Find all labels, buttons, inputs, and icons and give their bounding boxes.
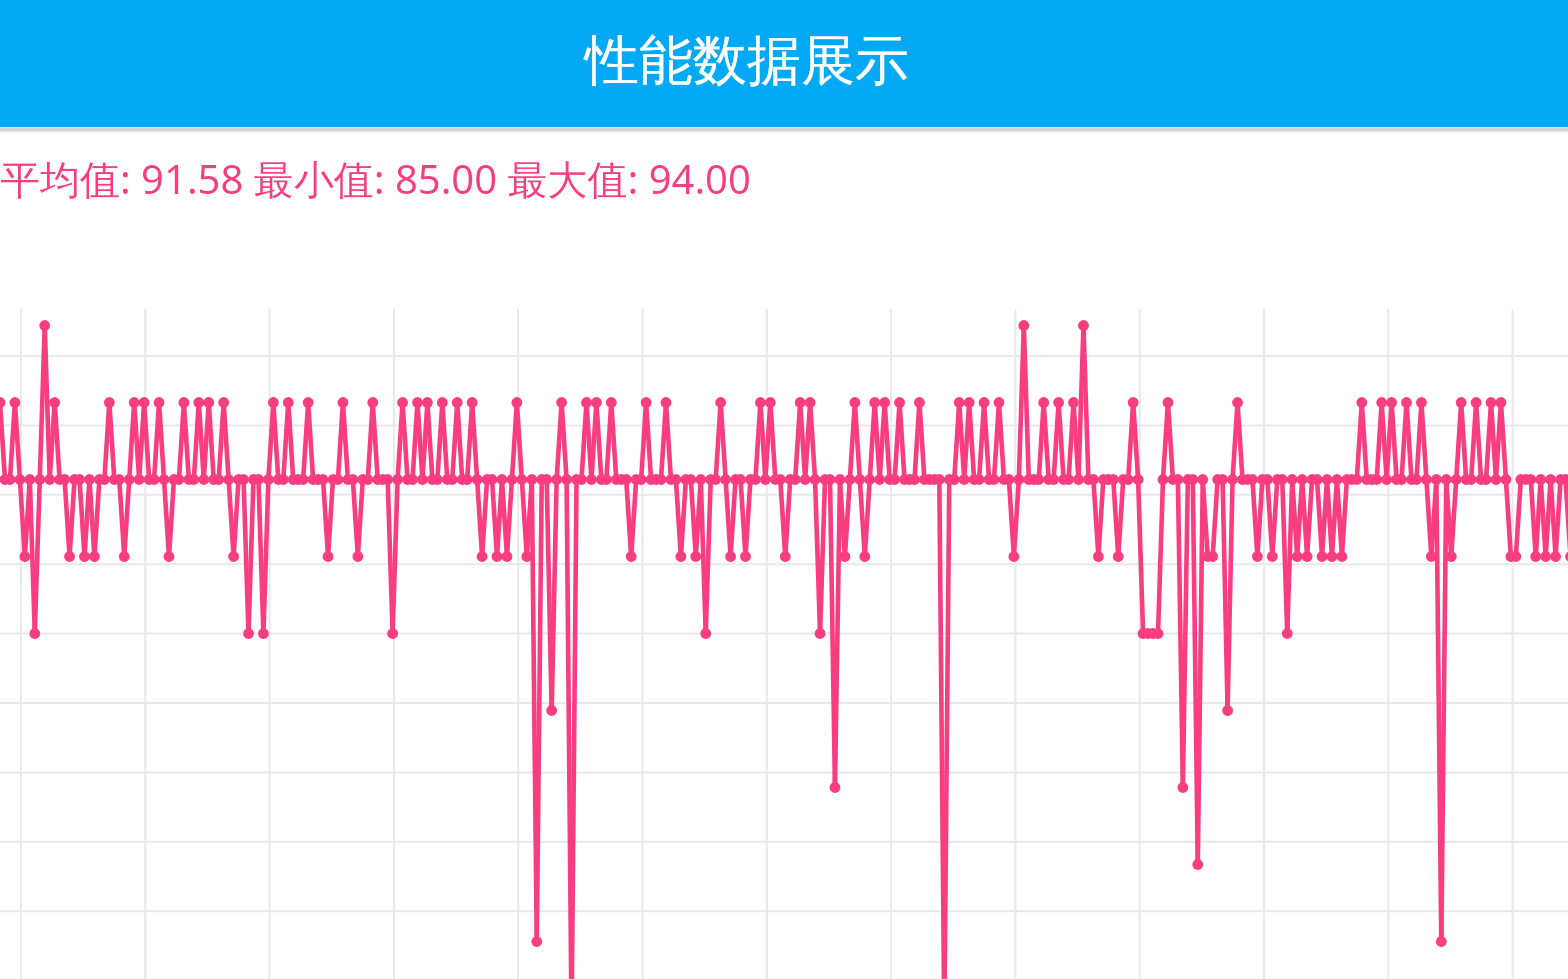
staticText: 性能数据展示 (585, 27, 909, 95)
button[interactable]: 性能数据曲线图 (0, 0, 1568, 979)
button[interactable]: 性能数据展示 (0, 0, 1568, 127)
button[interactable]: 平均值: 91.58 最小值: 85.00 最大值: 94.00 (0, 151, 751, 206)
staticText: 平均值: 91.58 最小值: 85.00 最大值: 94.00 (0, 151, 751, 206)
